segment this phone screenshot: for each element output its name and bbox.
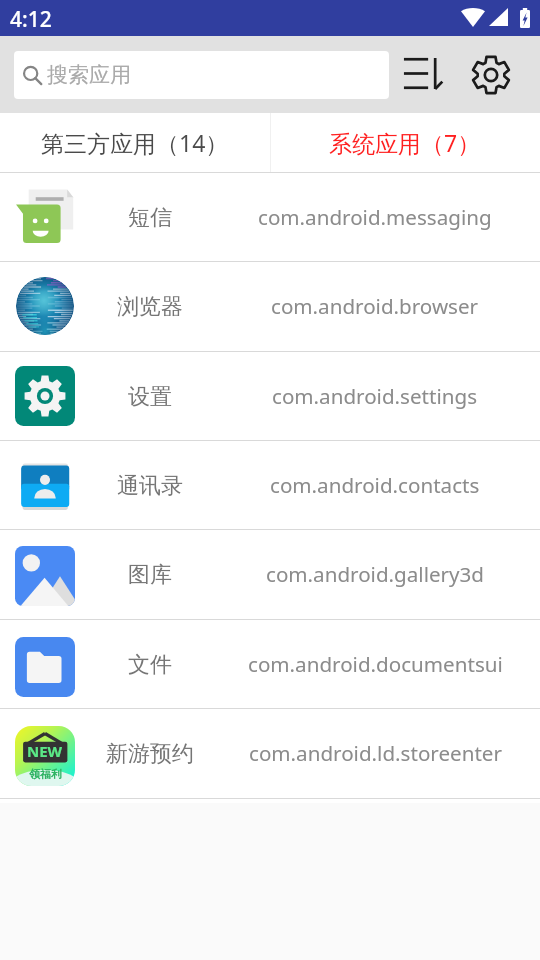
button[interactable]: NEW [0,709,540,797]
staticText: com.android.gallery3d [266,560,485,588]
staticText: 浏览器 [117,293,183,321]
staticText: com.android.messaging [258,203,492,231]
staticText: com.android.ld.storeenter [249,739,502,767]
staticText: 4:12 [10,5,52,34]
button[interactable]: 搜索应用 [14,51,389,99]
staticText: com.android.browser [271,292,479,320]
staticText: com.android.contacts [270,471,480,499]
staticText: 第三方应用（14） [41,127,229,158]
staticText: 设置 [128,383,172,411]
staticText: NEW [27,741,63,761]
staticText: 文件 [128,651,172,679]
staticText: 新游预约 [106,740,194,768]
staticText: 搜索应用 [47,62,131,88]
button[interactable]: 系统应用（7） [270,113,540,173]
button[interactable]: 短信 [0,173,540,261]
staticText: 通讯录 [117,472,183,500]
button[interactable]: 设置 [0,352,540,440]
staticText: com.android.documentsui [248,650,503,678]
button[interactable]: Settings [466,50,516,100]
staticText: 系统应用（7） [329,127,481,158]
button[interactable]: 浏览器 [0,262,540,350]
button[interactable]: 第三方应用（14） [0,113,270,173]
button[interactable]: 文件 [0,620,540,708]
button[interactable]: 通讯录 [0,441,540,529]
staticText: 领福利 [29,767,62,781]
button[interactable]: Sort [395,48,445,98]
button[interactable]: 图库 [0,530,540,618]
staticText: 图库 [128,561,172,589]
staticText: com.android.settings [272,382,478,410]
staticText: 短信 [128,204,172,232]
